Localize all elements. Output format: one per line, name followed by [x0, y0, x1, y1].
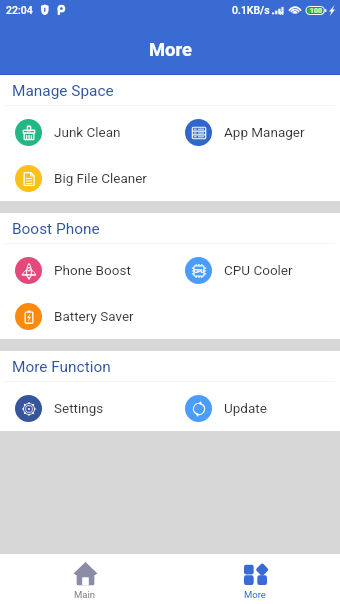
button[interactable]: Battery Saver — [0, 293, 170, 339]
button[interactable]: More — [170, 554, 340, 604]
button[interactable]: Junk Clean — [0, 109, 170, 155]
staticText: Settings — [54, 400, 104, 416]
staticText: Main — [74, 589, 96, 600]
staticText: Boost Phone — [12, 220, 100, 238]
staticText: Junk Clean — [54, 124, 121, 140]
staticText: CPU — [194, 268, 204, 274]
staticText: Battery Saver — [54, 308, 134, 324]
staticText: 0.1KB/s — [232, 4, 270, 16]
button[interactable]: Settings — [0, 385, 170, 431]
staticText: CPU Cooler — [224, 262, 293, 278]
staticText: Manage Space — [12, 82, 114, 100]
staticText: Phone Boost — [54, 262, 131, 278]
staticText: More — [149, 39, 192, 61]
staticText: 22:04 — [6, 4, 33, 16]
staticText: More Function — [12, 358, 111, 376]
button[interactable]: Update — [170, 385, 340, 431]
button[interactable]: CPU — [170, 247, 340, 293]
staticText: 100 — [310, 7, 323, 15]
button[interactable]: App Manager — [170, 109, 340, 155]
staticText: More — [244, 589, 266, 600]
button[interactable]: Main — [0, 554, 170, 604]
staticText: App Manager — [224, 124, 305, 140]
staticText: Update — [224, 400, 267, 416]
staticText: Big File Cleaner — [54, 170, 147, 186]
button[interactable]: Big File Cleaner — [0, 155, 170, 201]
button[interactable]: Phone Boost — [0, 247, 170, 293]
